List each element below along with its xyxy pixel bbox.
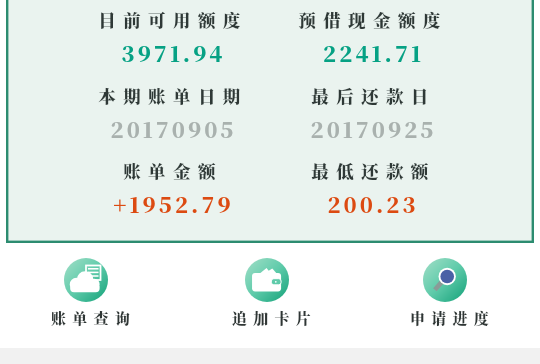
- staticText: 20170905: [110, 113, 237, 144]
- other: Bill inquiry: [64, 258, 108, 302]
- staticText: +1952.79: [113, 188, 234, 219]
- other: Application progress: [423, 258, 467, 302]
- staticText: 账单金额: [123, 158, 223, 183]
- staticText: 最低还款额: [311, 158, 436, 183]
- other: Add card: [245, 258, 289, 302]
- staticText: 目前可用额度: [98, 7, 248, 32]
- button[interactable]: Bill inquiry: [31, 254, 141, 333]
- staticText: 追加卡片: [232, 307, 317, 329]
- staticText: 20170925: [310, 113, 437, 144]
- staticText: 申请进度: [410, 307, 495, 329]
- button[interactable]: Add card: [212, 254, 322, 333]
- staticText: 200.23: [327, 188, 419, 219]
- button[interactable]: Application progress: [390, 254, 500, 333]
- staticText: 预借现金额度: [298, 7, 448, 32]
- staticText: 2241.71: [323, 37, 424, 68]
- staticText: 账单查询: [51, 307, 136, 329]
- staticText: 最后还款日: [311, 83, 436, 108]
- staticText: 3971.94: [121, 37, 226, 68]
- staticText: 本期账单日期: [98, 83, 248, 108]
